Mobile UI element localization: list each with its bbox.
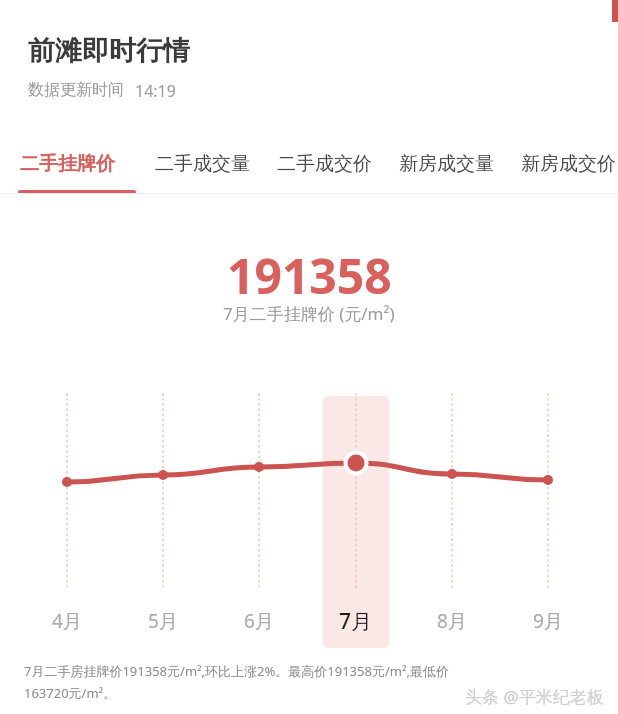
- staticText: 8月: [437, 608, 467, 634]
- staticText: 191358: [227, 243, 392, 308]
- staticText: 新房成交价: [521, 152, 616, 176]
- button[interactable]: 二手成交量: [155, 152, 258, 194]
- button[interactable]: 5月: [137, 605, 189, 637]
- button[interactable]: 6月: [233, 605, 285, 637]
- staticText: 新房成交量: [399, 152, 494, 176]
- staticText: 5月: [148, 608, 178, 634]
- staticText: 二手成交价: [277, 152, 372, 176]
- staticText: 9月: [533, 608, 563, 634]
- staticText: 6月: [244, 608, 274, 634]
- staticText: 前滩即时行情: [28, 34, 190, 68]
- staticText: 7月: [339, 607, 373, 636]
- staticText: 数据更新时间: [28, 80, 124, 100]
- staticText: 二手挂牌价: [20, 152, 115, 176]
- staticText: 二手成交量: [155, 152, 250, 176]
- button[interactable]: 新房成交价: [521, 152, 618, 194]
- staticText: 14:19: [135, 80, 176, 102]
- staticText: 4月: [52, 608, 82, 634]
- button[interactable]: 二手成交价: [277, 152, 380, 194]
- button[interactable]: 4月: [41, 605, 93, 637]
- button[interactable]: 8月: [426, 605, 478, 637]
- button[interactable]: 二手挂牌价: [20, 152, 138, 194]
- staticText: 163720元/m²。: [24, 684, 117, 702]
- staticText: 头条 @平米纪老板: [465, 685, 604, 708]
- staticText: 7月二手挂牌价 (元/m²): [223, 302, 395, 325]
- button[interactable]: 新房成交量: [399, 152, 502, 194]
- button[interactable]: 7月: [330, 605, 382, 637]
- staticText: 7月二手房挂牌价191358元/m²,环比上涨2%。最高价191358元/m²,…: [24, 662, 449, 680]
- button[interactable]: 9月: [522, 605, 574, 637]
